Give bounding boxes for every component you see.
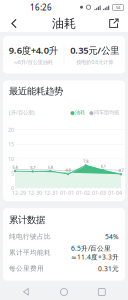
staticText: 16:26 [30,2,52,13]
staticText: 4.7 [118,168,123,173]
staticText: 7.8 [83,159,88,164]
staticText: 54% [105,232,119,241]
button[interactable]: 返回 [4,15,24,32]
button[interactable]: 主页 [52,285,75,298]
button[interactable]: 分享 [104,15,124,32]
staticText: 12-29 [12,189,26,196]
staticText: 按电价0.6元计算 [76,58,113,65]
staticText: 0.35元/公里 [70,44,119,56]
staticText: (升/百公里) [9,109,35,116]
button[interactable]: 最近任务 [90,285,113,298]
staticText: 12-30 [28,189,42,196]
staticText: 0 [11,184,14,192]
staticText: 20 [8,126,14,133]
staticText: 4.8 [65,167,70,173]
staticText: 15 [8,141,14,148]
staticText: 0.31元 [98,264,119,273]
staticText: 01-03 [92,189,106,196]
staticText: 54 [116,5,120,10]
staticText: 5.8 [12,164,17,170]
staticText: 9.6度+4.0升 [9,44,58,56]
staticText: 最近能耗趋势 [9,85,63,97]
staticText: 01-02 [76,189,90,196]
staticText: 纯电行驶占比 [9,232,51,241]
staticText: 6.5升/百公里 ≈11.4度+3.3升 [71,244,119,261]
staticText: 5.7 [30,165,35,170]
staticText: 累计平均能耗 [9,248,51,257]
staticText: ≈6升/百公里油耗 [14,58,53,65]
staticText: 每公里费用 [9,264,44,273]
staticText: 10 [8,155,14,162]
staticText: 油耗 [52,16,76,31]
staticText: ●同车型均值 [85,109,119,116]
staticText: 5.8 [48,164,53,170]
staticText: 01-01 [60,189,74,196]
staticText: 6.1 [101,164,106,169]
staticText: 01-04 [108,189,122,196]
staticText: 累计数据 [9,214,45,226]
staticText: ●油耗 [70,109,85,116]
staticText: 12-31 [44,189,58,196]
button[interactable]: 返回 [15,285,38,299]
staticText: 5 [11,170,14,177]
